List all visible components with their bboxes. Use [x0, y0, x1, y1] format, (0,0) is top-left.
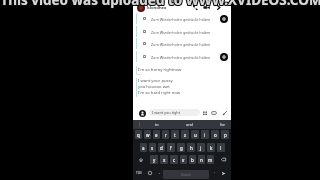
- staticText: w: [146, 132, 150, 138]
- staticText: This video was uploaded to WWW.XVIDEOS.C…: [0, 0, 320, 9]
- staticText: This video was uploaded to WWW.XVIDEOS.C…: [1, 0, 320, 8]
- button[interactable]: b: [189, 155, 196, 164]
- button[interactable]: I'm so hard right now: [138, 90, 181, 96]
- button[interactable]: Video call: [202, 3, 211, 12]
- staticText: m: [208, 157, 213, 163]
- button[interactable]: w: [144, 130, 151, 139]
- staticText: This video was uploaded to WWW.XVIDEOS.C…: [1, 0, 320, 10]
- staticText: p: [224, 132, 227, 138]
- staticText: blondhex: [147, 5, 167, 11]
- staticText: This video was uploaded to WWW.XVIDEOS.C…: [1, 0, 320, 9]
- button[interactable]: I want you tight: [149, 109, 200, 116]
- button[interactable]: and: [173, 120, 206, 129]
- button[interactable]: More options: [214, 3, 223, 12]
- button[interactable]: z: [181, 130, 189, 139]
- staticText: This video was uploaded to WWW.XVIDEOS.C…: [0, 0, 320, 10]
- staticText: v: [182, 157, 185, 163]
- staticText: t: [174, 132, 176, 138]
- staticText: c: [173, 157, 176, 163]
- button[interactable]: GIF: [210, 109, 218, 117]
- button[interactable]: k: [207, 143, 215, 152]
- staticText: Zum Wiederholen gedrückt halten: [151, 30, 211, 35]
- staticText: Zum Wiederholen gedrückt halten: [151, 17, 211, 22]
- staticText: x: [163, 157, 166, 163]
- staticText: and: [186, 122, 193, 127]
- button[interactable]: t: [171, 130, 179, 139]
- button[interactable]: for: [206, 120, 239, 129]
- staticText: .: [214, 169, 215, 174]
- staticText: This video was uploaded to WWW.XVIDEOS.C…: [0, 0, 319, 8]
- button[interactable]: g: [177, 143, 185, 152]
- button[interactable]: f: [167, 143, 175, 152]
- button[interactable]: Attach: [221, 109, 229, 117]
- button[interactable]: Stickers: [201, 109, 209, 117]
- staticText: r: [165, 132, 167, 138]
- button[interactable]: y: [150, 155, 158, 164]
- button[interactable]: Space: [163, 170, 209, 179]
- staticText: z: [184, 132, 187, 138]
- button[interactable]: c: [170, 155, 178, 164]
- button[interactable]: Camera: [139, 110, 146, 117]
- staticText: u: [194, 132, 197, 138]
- button[interactable]: Emoji: [145, 168, 155, 178]
- staticText: Zum Wiederholen gedrückt halten: [151, 42, 211, 47]
- staticText: i: [204, 132, 206, 138]
- staticText: b: [191, 157, 194, 163]
- staticText: f: [170, 145, 172, 151]
- staticText: q: [137, 132, 140, 138]
- staticText: for: [220, 122, 226, 127]
- staticText: This video was uploaded to WWW.XVIDEOS.C…: [0, 0, 319, 9]
- button[interactable]: x: [160, 155, 168, 164]
- staticText: This video was uploaded to WWW.XVIDEOS.C…: [0, 0, 320, 8]
- button[interactable]: r: [162, 130, 169, 139]
- button[interactable]: Zum Wiederholen gedrückt halten: [136, 26, 231, 38]
- staticText: k: [210, 145, 213, 151]
- button[interactable]: ?123: [134, 168, 143, 178]
- staticText: to: [155, 122, 159, 127]
- button[interactable]: to: [141, 120, 173, 129]
- button[interactable]: l: [217, 143, 225, 152]
- button[interactable]: Zum Wiederholen gedrückt halten: [136, 51, 231, 63]
- button[interactable]: m: [207, 155, 214, 164]
- staticText: d: [160, 145, 163, 151]
- button[interactable]: you hooooo wet: [138, 84, 170, 90]
- button[interactable]: e: [153, 130, 160, 139]
- staticText: g: [180, 145, 183, 151]
- button[interactable]: j: [197, 143, 205, 152]
- button[interactable]: u: [191, 130, 199, 139]
- button[interactable]: h: [187, 143, 195, 152]
- button[interactable]: o: [211, 130, 219, 139]
- staticText: y: [153, 157, 156, 163]
- staticText: 10:54: [136, 73, 142, 76]
- button[interactable]: Profile photo: [137, 4, 145, 12]
- staticText: I want you tight: [152, 110, 181, 115]
- staticText: o: [214, 132, 217, 138]
- staticText: s: [151, 145, 154, 151]
- button[interactable]: q: [135, 130, 142, 139]
- button[interactable]: Backspace: [215, 155, 231, 164]
- staticText: h: [190, 145, 193, 151]
- button[interactable]: Voice call: [191, 3, 200, 12]
- button[interactable]: d: [158, 143, 165, 152]
- staticText: ,: [159, 169, 160, 174]
- staticText: n: [200, 157, 203, 163]
- button[interactable]: i: [201, 130, 209, 139]
- button[interactable]: s: [149, 143, 156, 152]
- staticText: a: [142, 145, 145, 151]
- button[interactable]: Shift: [133, 155, 149, 164]
- button[interactable]: Zum Wiederholen gedrückt halten: [136, 38, 231, 50]
- staticText: This video was uploaded to WWW.XVIDEOS.C…: [0, 0, 319, 10]
- staticText: l: [220, 145, 222, 151]
- button[interactable]: n: [198, 155, 205, 164]
- button[interactable]: a: [140, 143, 147, 152]
- button[interactable]: I'm so horny rightnow: [138, 67, 182, 73]
- button[interactable]: I want your pussy: [138, 78, 173, 84]
- button[interactable]: Zum Wiederholen gedrückt halten: [136, 13, 231, 25]
- button[interactable]: Send: [218, 168, 228, 178]
- staticText: Deutsch: [181, 173, 191, 177]
- staticText: j: [200, 145, 202, 151]
- button[interactable]: v: [180, 155, 187, 164]
- staticText: ?123: [136, 171, 142, 175]
- button[interactable]: p: [221, 130, 229, 139]
- staticText: Zum Wiederholen gedrückt halten: [151, 55, 211, 60]
